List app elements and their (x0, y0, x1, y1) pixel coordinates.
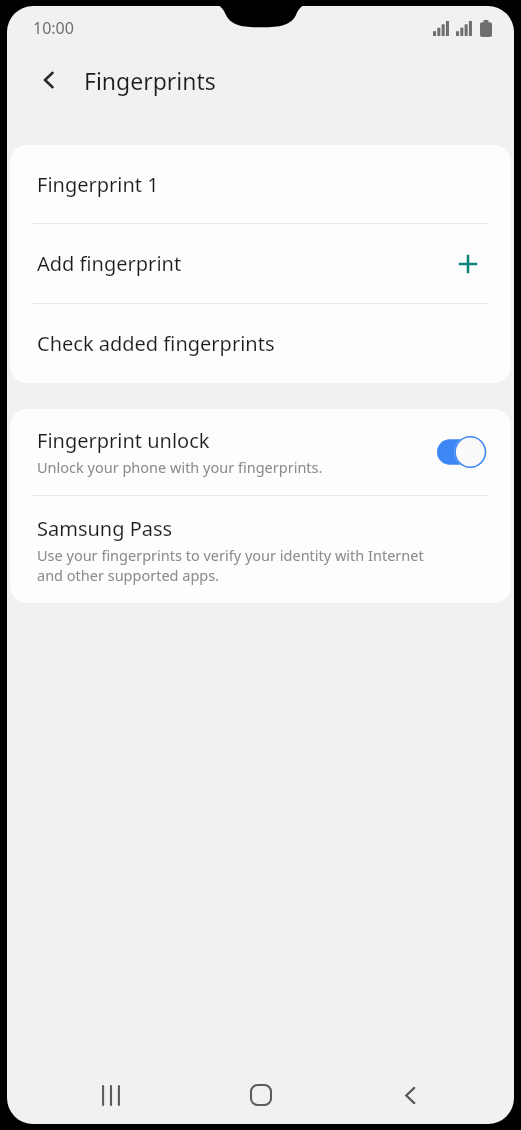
button[interactable]: Fingerprint unlock (10, 409, 511, 495)
button[interactable]: Back (25, 56, 73, 104)
button[interactable]: Check added fingerprints (10, 304, 511, 383)
button[interactable]: Samsung Pass (10, 496, 511, 603)
button[interactable]: Home (216, 1069, 306, 1121)
staticText: Fingerprint 1 (37, 171, 159, 198)
staticText: Add fingerprint (37, 250, 182, 277)
staticText: Check added fingerprints (37, 330, 275, 357)
staticText: 10:00 (33, 17, 74, 39)
staticText: Use your fingerprints to verify your ide… (37, 545, 451, 585)
button[interactable]: Fingerprint 1 (10, 145, 511, 223)
button[interactable]: Add fingerprint (10, 224, 511, 303)
button[interactable]: Fingerprint unlock toggle (435, 435, 491, 469)
staticText: Fingerprints (84, 65, 216, 96)
button[interactable]: Recent apps (66, 1069, 156, 1121)
button[interactable]: Back (365, 1069, 455, 1121)
staticText: Samsung Pass (37, 515, 173, 542)
staticText: Unlock your phone with your fingerprints… (37, 457, 323, 477)
staticText: Fingerprint unlock (37, 427, 210, 454)
